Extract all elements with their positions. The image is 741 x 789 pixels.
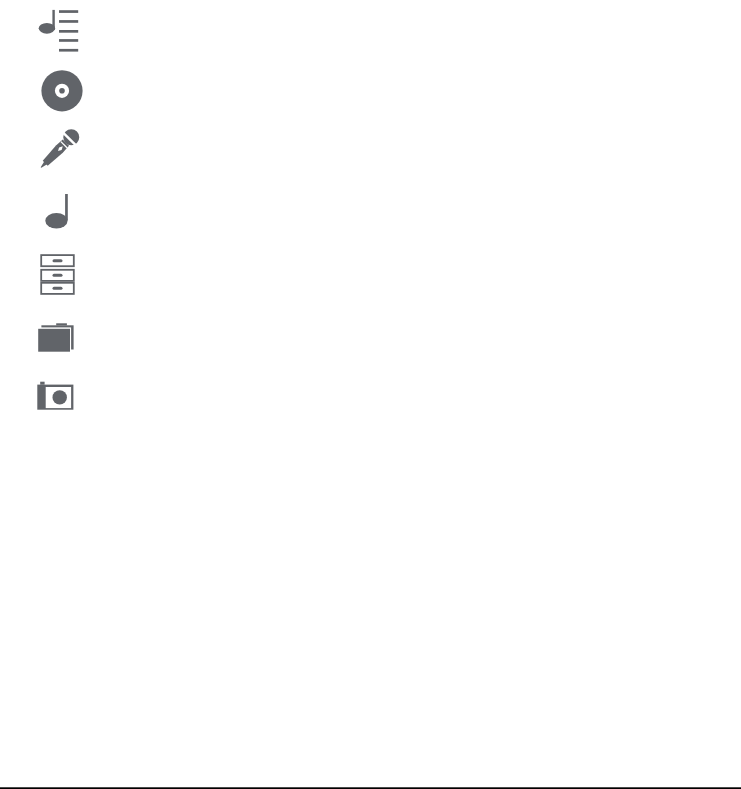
- button[interactable]: Playlists: [0, 0, 741, 61]
- button[interactable]: Artists: [0, 122, 741, 183]
- button[interactable]: Folders: [0, 305, 741, 366]
- button[interactable]: Songs: [0, 183, 741, 244]
- button[interactable]: Albums: [0, 61, 741, 122]
- button[interactable]: Genres: [0, 244, 741, 305]
- button[interactable]: Radio: [0, 366, 741, 427]
